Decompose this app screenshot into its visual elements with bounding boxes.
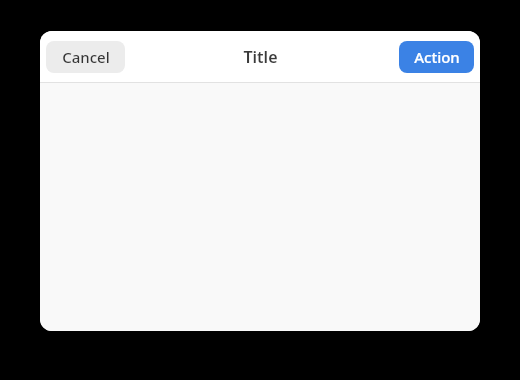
staticText: Cancel [62,47,110,67]
button[interactable]: Cancel [46,41,125,73]
button[interactable]: Action [399,41,474,73]
staticText: Action [414,47,460,67]
staticText: Title [243,46,278,68]
